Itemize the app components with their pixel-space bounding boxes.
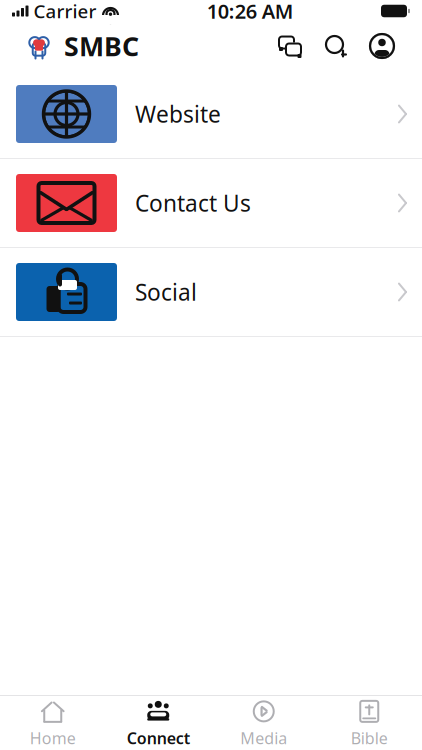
button[interactable]: Connect bbox=[105, 691, 211, 750]
button[interactable]: Contact Us bbox=[0, 159, 422, 248]
staticText: SMBC bbox=[64, 28, 139, 64]
button[interactable]: Website bbox=[0, 70, 422, 159]
staticText: Media bbox=[240, 727, 287, 749]
staticText: Connect bbox=[127, 727, 190, 749]
button[interactable]: Messages bbox=[270, 26, 310, 66]
staticText: Home bbox=[30, 727, 76, 749]
button[interactable]: Social bbox=[0, 248, 422, 337]
button[interactable]: Account bbox=[362, 26, 402, 66]
staticText: Carrier bbox=[33, 0, 96, 23]
staticText: Contact Us bbox=[135, 188, 251, 218]
staticText: Website bbox=[135, 99, 221, 129]
staticText: Social bbox=[135, 277, 197, 307]
staticText: 10:26 AM bbox=[207, 0, 294, 24]
button[interactable]: Bible bbox=[316, 691, 422, 750]
button[interactable]: Media bbox=[211, 691, 316, 750]
staticText: Bible bbox=[351, 727, 388, 749]
button[interactable]: Search bbox=[316, 26, 356, 66]
button[interactable]: Home bbox=[0, 691, 105, 750]
